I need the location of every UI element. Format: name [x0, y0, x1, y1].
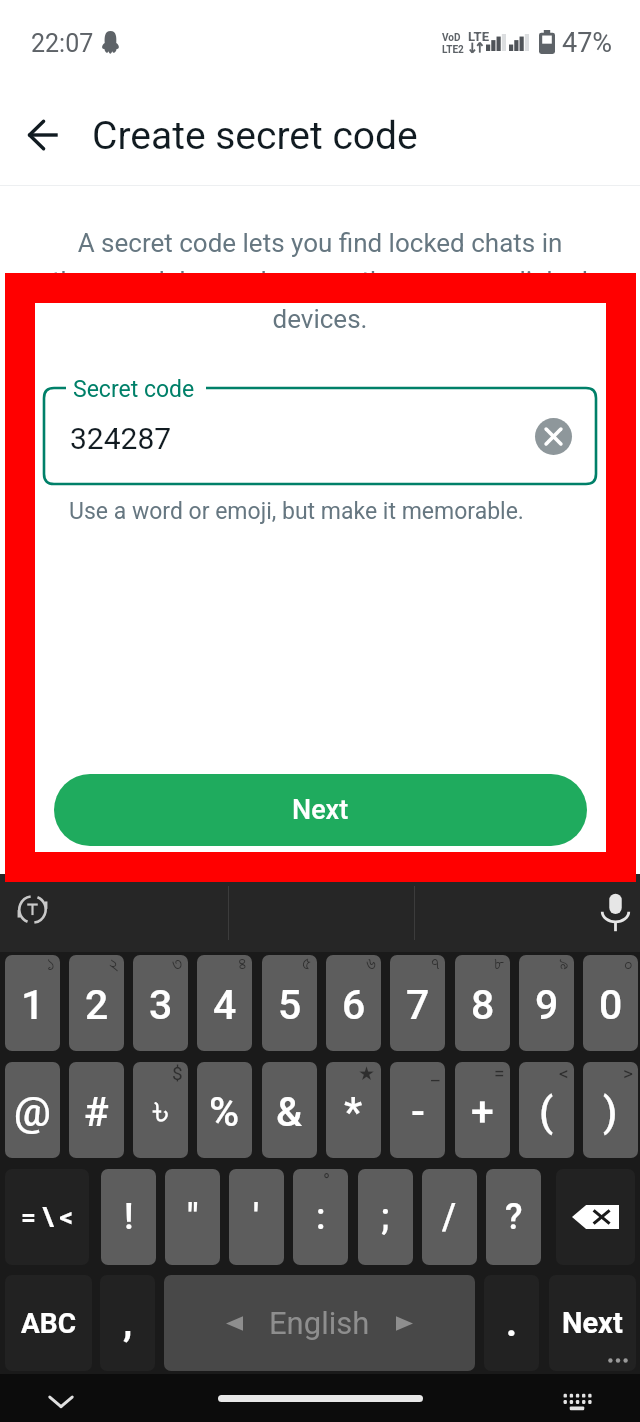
button[interactable]: Voice input [587, 884, 640, 940]
staticText: 3 [149, 981, 173, 1029]
staticText: 0 [599, 981, 623, 1029]
button[interactable]: ' [229, 1169, 284, 1265]
staticText: ৬ [366, 955, 376, 974]
button[interactable]: 4 [197, 955, 252, 1051]
staticText: ২ [109, 955, 119, 974]
button[interactable]: 3 [133, 955, 188, 1051]
staticText: & [276, 1088, 303, 1136]
button[interactable]: ৳ [133, 1062, 188, 1158]
staticText: # [84, 1088, 109, 1136]
staticText: : [316, 1196, 326, 1238]
staticText: > [623, 1062, 633, 1084]
button[interactable]: 9 [519, 955, 574, 1051]
staticText: - [411, 1088, 425, 1136]
button[interactable]: / [422, 1169, 477, 1265]
staticText: A secret code lets you find locked chats… [20, 228, 620, 334]
staticText: ( [539, 1088, 554, 1136]
staticText: ! [124, 1196, 134, 1238]
staticText: 4 [213, 981, 237, 1029]
staticText: Next [292, 794, 349, 826]
button[interactable]: ( [519, 1062, 574, 1158]
button[interactable]: & [262, 1062, 317, 1158]
button[interactable]: Next [549, 1275, 636, 1371]
staticText: ° [323, 1169, 331, 1191]
button[interactable] [44, 388, 596, 484]
staticText: ; [381, 1196, 390, 1238]
button[interactable]: * [326, 1062, 381, 1158]
button[interactable]: English [164, 1275, 475, 1371]
staticText: ) [603, 1088, 618, 1136]
button[interactable]: # [69, 1062, 124, 1158]
staticText: = \ < [21, 1202, 74, 1232]
staticText: 47% [562, 27, 613, 59]
button[interactable]: Next [54, 774, 587, 846]
button[interactable]: " [165, 1169, 220, 1265]
button[interactable]: . [484, 1275, 539, 1371]
staticText: Secret code [73, 376, 195, 402]
staticText: 5 [278, 981, 302, 1029]
staticText: ৳ [153, 1092, 169, 1133]
staticText: 8 [471, 981, 495, 1029]
staticText: ৪ [238, 955, 247, 974]
button[interactable]: Translate [2, 879, 63, 940]
staticText: Use a word or emoji, but make it memorab… [69, 498, 524, 525]
button[interactable]: % [197, 1062, 252, 1158]
staticText: _ [431, 1062, 440, 1084]
button[interactable]: 8 [455, 955, 510, 1051]
staticText: 7 [406, 981, 430, 1029]
staticText: < [559, 1062, 569, 1084]
staticText: LTE2 [442, 44, 464, 56]
button[interactable]: , [100, 1275, 155, 1371]
button[interactable]: ) [583, 1062, 638, 1158]
staticText: 9 [535, 981, 559, 1029]
button[interactable]: 6 [326, 955, 381, 1051]
staticText: ৯ [559, 955, 569, 974]
staticText: ৮ [494, 955, 505, 974]
button[interactable]: 2 [69, 955, 124, 1051]
button[interactable]: 1 [5, 955, 60, 1051]
button[interactable]: ABC [5, 1275, 92, 1371]
staticText: ' [253, 1196, 260, 1238]
button[interactable]: 5 [262, 955, 317, 1051]
staticText: LTE [468, 29, 489, 44]
button[interactable]: : [293, 1169, 348, 1265]
button[interactable]: Clear text [533, 416, 573, 456]
staticText: 2 [85, 981, 109, 1029]
staticText: " [187, 1196, 199, 1238]
button[interactable]: = \ < [5, 1169, 89, 1265]
button[interactable]: Switch keyboard [556, 1380, 598, 1422]
staticText: ১ [47, 955, 55, 974]
button[interactable]: 7 [390, 955, 445, 1051]
staticText: Create secret code [92, 113, 418, 159]
staticText: ৭ [431, 955, 440, 974]
button[interactable]: 0 [583, 955, 638, 1051]
staticText: Next [562, 1306, 623, 1340]
staticText: + [471, 1088, 494, 1136]
button[interactable]: Hide keyboard [40, 1380, 82, 1422]
staticText: 1 [21, 981, 45, 1029]
staticText: ০ [624, 955, 633, 974]
staticText: ★ [358, 1062, 376, 1084]
button[interactable]: Back [15, 107, 71, 163]
staticText: 324287 [70, 421, 172, 456]
staticText: . [506, 1301, 518, 1346]
staticText: / [442, 1196, 457, 1238]
staticText: * [344, 1088, 363, 1136]
staticText: , [123, 1301, 133, 1346]
button[interactable]: ; [358, 1169, 413, 1265]
button[interactable]: + [455, 1062, 510, 1158]
button[interactable]: ! [101, 1169, 156, 1265]
button[interactable]: Backspace [556, 1169, 635, 1265]
button[interactable]: - [390, 1062, 445, 1158]
staticText: 22:07 [31, 29, 94, 58]
staticText: $ [172, 1062, 183, 1084]
staticText: VoD [442, 32, 461, 44]
staticText: ? [505, 1196, 523, 1238]
staticText: English [269, 1305, 370, 1341]
staticText: ABC [21, 1307, 77, 1340]
staticText: ৩ [172, 955, 183, 974]
staticText: 6 [342, 981, 366, 1029]
button[interactable]: @ [5, 1062, 60, 1158]
button[interactable]: ? [486, 1169, 541, 1265]
staticText: ৫ [302, 955, 312, 974]
